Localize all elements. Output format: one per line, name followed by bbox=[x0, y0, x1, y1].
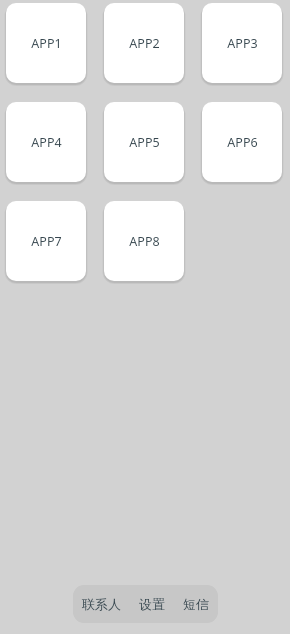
button[interactable]: 设置 bbox=[130, 585, 174, 623]
staticText: APP6 bbox=[227, 134, 258, 151]
button[interactable]: APP5 bbox=[104, 102, 184, 182]
staticText: APP8 bbox=[129, 233, 160, 250]
button[interactable]: APP2 bbox=[104, 3, 184, 83]
button[interactable]: APP7 bbox=[6, 201, 86, 281]
staticText: APP2 bbox=[129, 35, 160, 52]
button[interactable]: 短信 bbox=[174, 585, 218, 623]
staticText: APP1 bbox=[31, 35, 62, 52]
staticText: 联系人 bbox=[82, 596, 121, 612]
button[interactable]: 联系人 bbox=[73, 585, 130, 623]
staticText: 短信 bbox=[183, 596, 209, 612]
button[interactable]: APP1 bbox=[6, 3, 86, 83]
staticText: APP7 bbox=[31, 233, 62, 250]
button[interactable]: APP4 bbox=[6, 102, 86, 182]
button[interactable]: APP6 bbox=[202, 102, 282, 182]
staticText: APP4 bbox=[31, 134, 62, 151]
staticText: APP5 bbox=[129, 134, 160, 151]
staticText: APP3 bbox=[227, 35, 258, 52]
staticText: 设置 bbox=[139, 596, 165, 612]
button[interactable]: APP8 bbox=[104, 201, 184, 281]
button[interactable]: APP3 bbox=[202, 3, 282, 83]
